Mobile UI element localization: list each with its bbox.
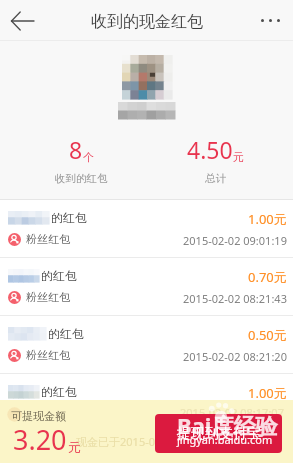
- button[interactable]: 的红包: [0, 258, 293, 316]
- staticText: 2015-02-02 08:21:43: [183, 291, 287, 306]
- staticText: 8: [69, 134, 83, 165]
- staticText: 2015-02-02 08:17:07: [180, 405, 284, 420]
- staticText: 2015-02-02 09:01:19: [183, 233, 287, 248]
- staticText: 的红包: [41, 268, 77, 283]
- button[interactable]: 的红包: [0, 432, 293, 463]
- button[interactable]: 的红包: [0, 316, 293, 374]
- staticText: 的红包: [41, 384, 77, 399]
- staticText: 2015-02-02 08:17:07: [183, 407, 287, 422]
- staticText: 的红包: [45, 430, 81, 445]
- staticText: 提现到支付宝: [177, 425, 261, 443]
- button[interactable]: 的红包: [0, 374, 293, 432]
- staticText: 粉丝红包: [26, 232, 70, 246]
- staticText: 4.50: [187, 134, 233, 165]
- staticText: Bai度经验: [177, 410, 278, 440]
- button[interactable]: Back: [0, 0, 45, 41]
- staticText: 粉丝红包: [26, 290, 70, 304]
- staticText: jingyan.baidu.com: [177, 432, 273, 447]
- staticText: 1.00元: [248, 384, 287, 402]
- staticText: 0.50元: [248, 326, 287, 344]
- staticText: 收到的红包: [55, 172, 108, 185]
- staticText: 的红包: [48, 326, 84, 341]
- staticText: 2015-02-02 08:21:20: [183, 349, 287, 364]
- staticText: 现金已于2015-02: [76, 434, 162, 449]
- button[interactable]: 的红包: [0, 200, 293, 258]
- staticText: 粉丝红包: [26, 348, 70, 362]
- staticText: 元: [68, 439, 81, 455]
- staticText: 元: [233, 150, 244, 164]
- staticText: 粉丝红包: [26, 452, 70, 463]
- staticText: 个: [83, 150, 94, 164]
- staticText: 收到的现金红包: [91, 12, 203, 32]
- staticText: 粉丝红包: [26, 406, 70, 420]
- staticText: 总计: [205, 172, 226, 185]
- staticText: 可提现金额: [11, 409, 66, 423]
- staticText: 3.20: [13, 421, 67, 458]
- staticText: 1.00元: [248, 210, 287, 228]
- button[interactable]: More options: [248, 0, 293, 41]
- staticText: 0.50元: [248, 432, 287, 450]
- button[interactable]: 提现到支付宝: [155, 414, 282, 453]
- staticText: 的红包: [51, 210, 87, 225]
- staticText: 0.70元: [248, 268, 287, 286]
